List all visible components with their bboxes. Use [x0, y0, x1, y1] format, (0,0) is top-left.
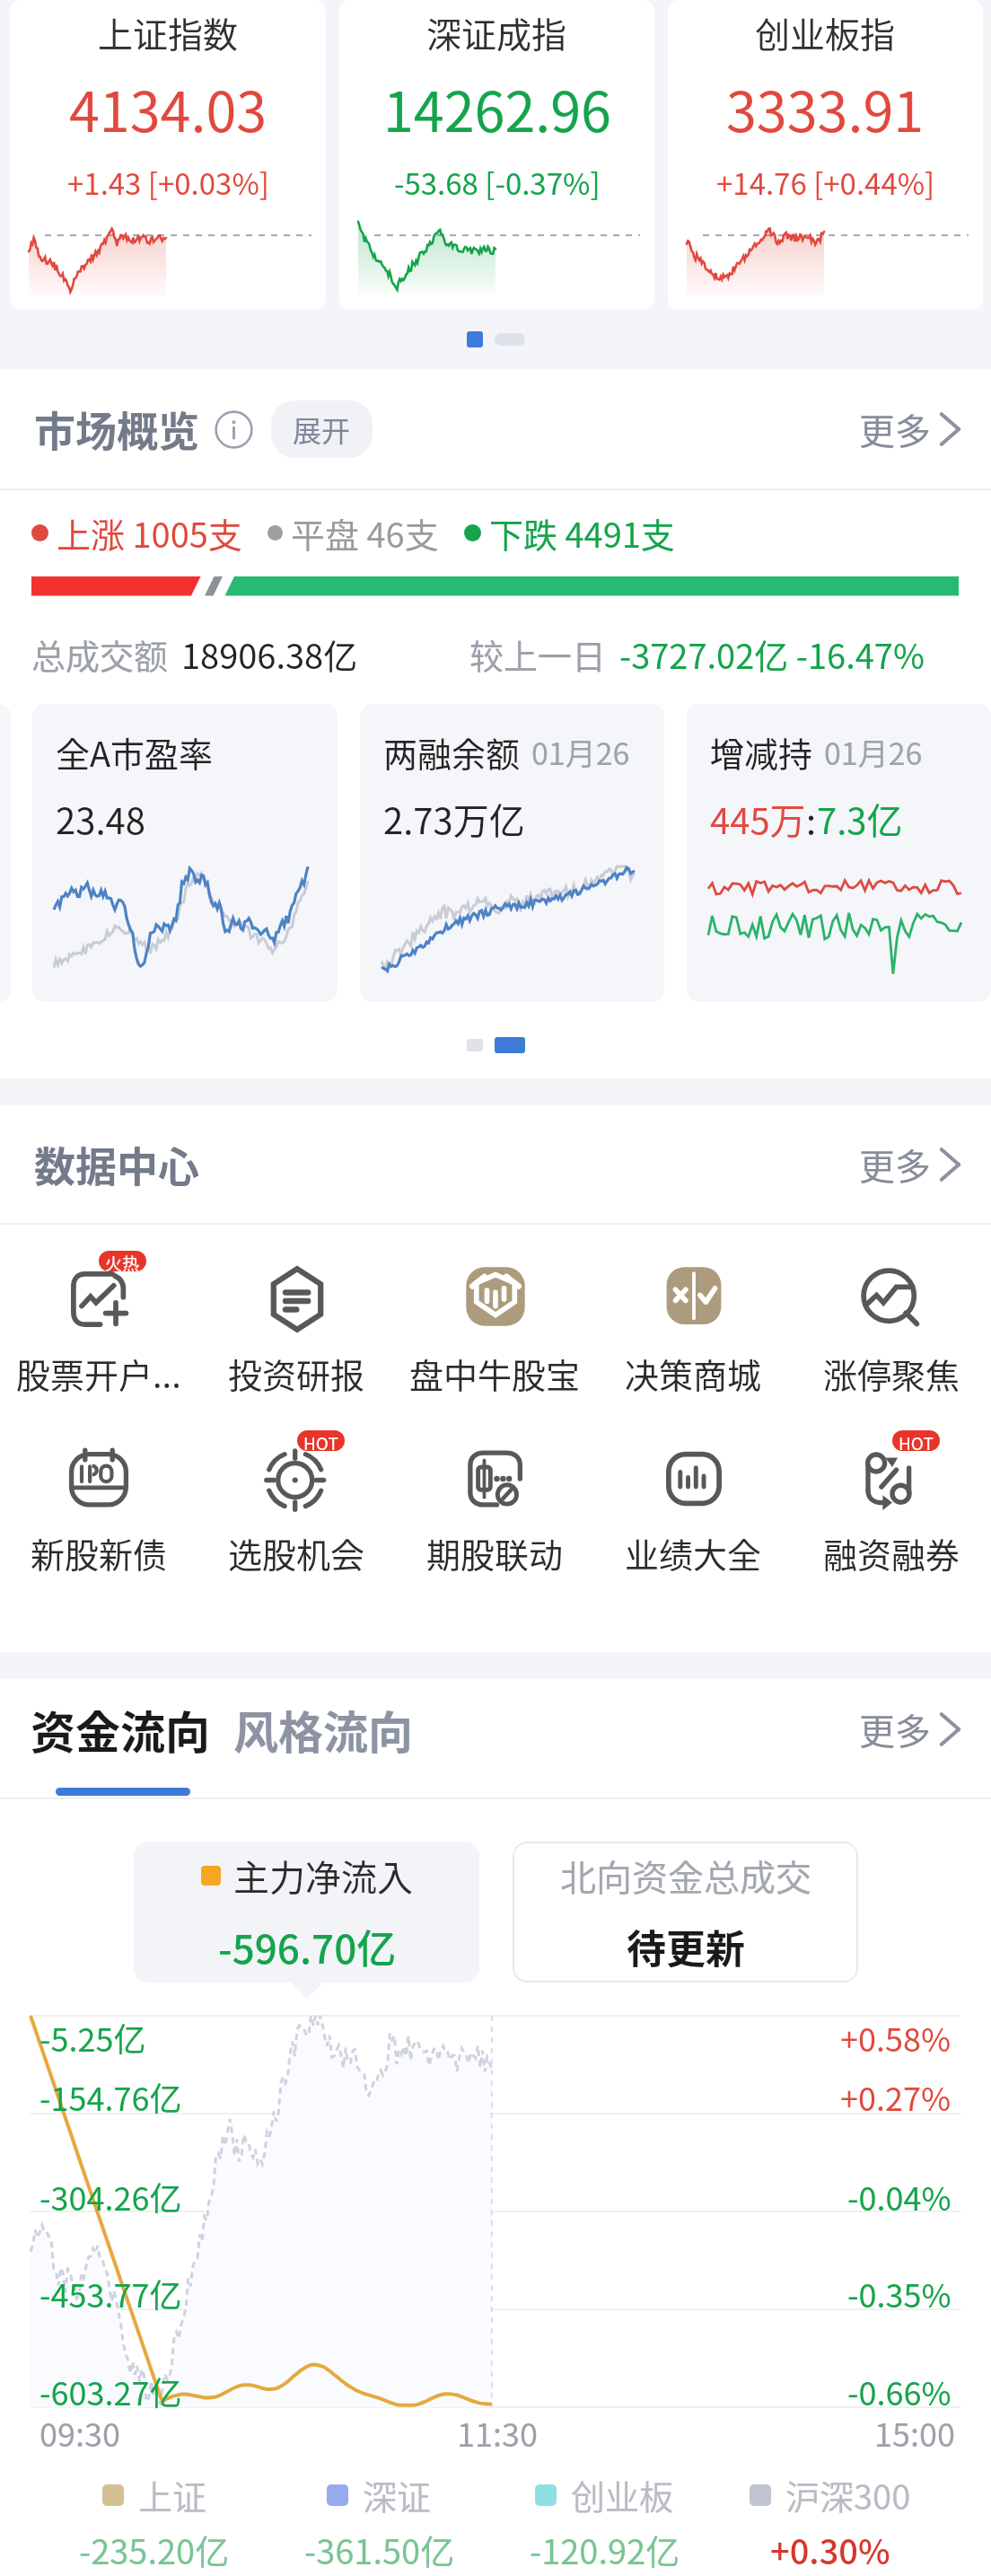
staticText: -3727.02亿 -16.47% [619, 629, 925, 679]
staticText: 沪深300 [785, 2470, 911, 2519]
staticText: -120.92亿 [530, 2525, 680, 2574]
staticText: 深证成指 [426, 7, 567, 57]
staticText: 更多 [859, 1703, 931, 1755]
staticText: 4134.03 [69, 68, 267, 147]
staticText: 盘中牛股宝 [409, 1349, 581, 1398]
staticText: 涨停聚焦 [823, 1349, 960, 1398]
button[interactable]: HOT [793, 1430, 991, 1578]
staticText: 01月26 [824, 730, 923, 774]
staticText: 业绩大全 [625, 1528, 762, 1578]
staticText: 融资融券 [823, 1528, 960, 1578]
staticText: +0.30% [770, 2525, 890, 2574]
staticText: 09:30 [39, 2409, 120, 2452]
staticText: -596.70亿 [218, 1918, 397, 1975]
staticText: 深证 [363, 2470, 432, 2519]
staticText: 2.73万亿 [383, 793, 525, 845]
button[interactable]: 北向资金总成交 [513, 1842, 858, 1983]
button[interactable]: 主力净流入 [134, 1842, 479, 1983]
button[interactable]: 深证成指 [339, 0, 654, 310]
staticText: 15:00 [874, 2409, 955, 2452]
staticText: -0.66% [847, 2368, 952, 2414]
button[interactable]: 更多 [859, 1694, 960, 1764]
button[interactable]: 盘中牛股宝 [396, 1251, 594, 1398]
button[interactable]: 增减持 [687, 704, 991, 1002]
staticText: 期股联动 [426, 1528, 564, 1578]
staticText: HOT [899, 1430, 934, 1451]
staticText: -304.26亿 [39, 2173, 182, 2220]
button[interactable]: 投资研报 [197, 1251, 396, 1398]
staticText: -53.68 [-0.37%] [394, 161, 601, 204]
staticText: 18906.38亿 [181, 629, 358, 679]
staticText: 总成交额 [31, 629, 169, 679]
staticText: 数据中心 [34, 1134, 199, 1194]
staticText: 北向资金总成交 [560, 1850, 811, 1902]
button[interactable]: 展开 [271, 400, 373, 458]
staticText: +0.58% [840, 2014, 952, 2061]
staticText: 资金流向 [31, 1697, 210, 1762]
button[interactable]: 上证 [42, 2470, 267, 2519]
staticText: -154.76亿 [39, 2073, 182, 2120]
button[interactable]: 新股新债 [0, 1430, 197, 1578]
staticText: +1.43 [+0.03%] [67, 161, 269, 204]
staticText: -361.50亿 [304, 2525, 455, 2574]
staticText: 展开 [293, 409, 351, 450]
button[interactable]: 说明 [214, 409, 253, 449]
staticText: 市场概览 [34, 399, 199, 459]
staticText: -603.27亿 [39, 2368, 182, 2414]
button[interactable]: 上证指数 [10, 0, 326, 310]
staticText: 平盘 46支 [291, 508, 439, 558]
staticText: 股票开户... [16, 1349, 181, 1398]
staticText: -235.20亿 [79, 2525, 230, 2574]
button[interactable]: 创业板指 [668, 0, 983, 310]
staticText: -0.35% [847, 2270, 952, 2317]
staticText: 01月26 [531, 730, 630, 774]
staticText: HOT [303, 1430, 338, 1451]
staticText: 选股机会 [228, 1528, 365, 1578]
staticText: 上证指数 [98, 7, 239, 57]
staticText: 更多 [859, 403, 931, 455]
button[interactable]: 火热 [0, 1251, 197, 1398]
button[interactable]: 更多 [859, 1130, 960, 1200]
button[interactable]: 资金流向 [31, 1688, 210, 1771]
staticText: 新股新债 [31, 1528, 168, 1578]
staticText: 待更新 [627, 1918, 745, 1975]
button[interactable]: 期股联动 [396, 1430, 594, 1578]
staticText: 两融余额 [383, 727, 521, 777]
staticText: 7.3亿 [817, 793, 903, 845]
button[interactable]: 业绩大全 [594, 1430, 793, 1578]
staticText: +14.76 [+0.44%] [716, 161, 935, 204]
staticText: 风格流向 [233, 1697, 413, 1762]
button[interactable]: 风格流向 [233, 1688, 413, 1771]
staticText: 增减持 [710, 727, 813, 777]
button[interactable]: 创业板 [492, 2470, 717, 2519]
button[interactable]: 两融余额 [360, 704, 664, 1002]
staticText: 投资研报 [228, 1349, 365, 1398]
button[interactable]: 决策商城 [594, 1251, 793, 1398]
staticText: 全A市盈率 [56, 727, 214, 777]
button[interactable]: 更多 [859, 394, 960, 464]
button[interactable]: 全A市盈率 [32, 704, 338, 1002]
staticText: 23.48 [56, 793, 145, 845]
staticText: 决策商城 [625, 1349, 762, 1398]
staticText: 主力净流入 [233, 1850, 413, 1902]
button[interactable]: HOT [197, 1430, 396, 1578]
staticText: 下跌 4491支 [489, 508, 675, 558]
staticText: 创业板指 [755, 7, 896, 57]
staticText: 14262.96 [383, 68, 611, 147]
staticText: +0.27% [840, 2073, 952, 2120]
staticText: -0.04% [847, 2173, 952, 2220]
staticText: -5.25亿 [39, 2014, 146, 2061]
staticText: 445万 [710, 793, 806, 845]
staticText: 11:30 [457, 2409, 538, 2452]
staticText: -453.77亿 [39, 2270, 182, 2317]
button[interactable]: 深证 [267, 2470, 492, 2519]
staticText: 火热 [105, 1251, 140, 1271]
staticText: 更多 [859, 1139, 931, 1191]
staticText: 3333.91 [726, 68, 925, 147]
staticText: 上证 [138, 2470, 207, 2519]
staticText: 上涨 1005支 [57, 508, 242, 558]
button[interactable]: 涨停聚焦 [793, 1251, 991, 1398]
staticText: 创业板 [571, 2470, 674, 2519]
button[interactable]: 沪深300 [717, 2470, 943, 2519]
staticText: 较上一日 [469, 629, 607, 679]
